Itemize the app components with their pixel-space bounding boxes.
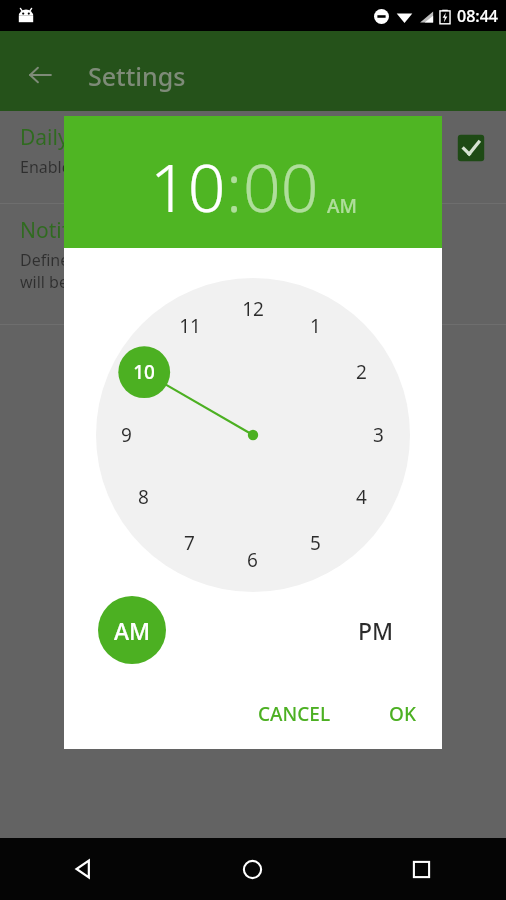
button[interactable]: Back (0, 838, 168, 900)
staticText: 3 (373, 422, 384, 448)
staticText: 8 (138, 484, 149, 510)
staticText: PM (358, 615, 394, 646)
button[interactable]: Daily reminder checkbox (456, 133, 486, 163)
staticText: 6 (247, 547, 258, 573)
button[interactable]: Home (168, 838, 337, 900)
staticText: 2 (356, 359, 367, 385)
staticText: Define the time when the notification wi… (20, 249, 300, 293)
staticText: AM (114, 615, 151, 646)
staticText: Notification time (20, 216, 185, 245)
staticText: 11 (179, 313, 201, 339)
staticText: 08:44 (457, 5, 498, 27)
staticText: 9 (121, 422, 132, 448)
staticText: OK (389, 701, 416, 727)
staticText: 5 (310, 530, 321, 556)
button[interactable]: Notification time (0, 204, 506, 324)
staticText: : (226, 141, 243, 231)
staticText: 10 (133, 359, 155, 385)
button[interactable]: Clock face, hour 10 selected (96, 278, 410, 592)
staticText: AM (327, 193, 357, 219)
button[interactable]: CANCEL (242, 691, 347, 737)
staticText: 4 (356, 484, 367, 510)
staticText: 7 (184, 530, 195, 556)
staticText: Enable a daily notification (20, 156, 213, 178)
button[interactable]: OK (373, 691, 432, 737)
button[interactable]: Recent apps (337, 838, 506, 900)
button[interactable]: AM (98, 596, 166, 664)
staticText: 1 (310, 313, 321, 339)
button[interactable]: Back (16, 51, 64, 99)
staticText: Settings (88, 59, 186, 93)
button[interactable]: 00 (243, 141, 319, 231)
button[interactable]: 10 (150, 141, 226, 231)
button[interactable]: Daily reminder (0, 111, 506, 203)
staticText: CANCEL (258, 701, 331, 727)
button[interactable]: PM (342, 596, 410, 664)
staticText: 12 (242, 296, 264, 322)
staticText: Daily reminder (20, 123, 166, 152)
